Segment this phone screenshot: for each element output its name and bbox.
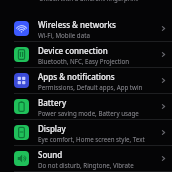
staticText: Do not disturb, Ringtone, Vibrate (38, 161, 134, 169)
staticText: Eye comfort, Home screen style, Text sty… (38, 135, 154, 143)
staticText: Permissions, Default apps, App twin (38, 83, 143, 91)
button[interactable]: Battery (0, 94, 172, 119)
button[interactable]: Device connection (0, 42, 172, 67)
other: Open (154, 42, 172, 67)
other: Open (154, 94, 172, 119)
button[interactable]: Sound (0, 146, 172, 171)
staticText: Wireless & networks (38, 19, 116, 30)
staticText: Display (38, 123, 66, 134)
staticText: Wi-Fi, Mobile data (38, 31, 90, 39)
staticText: Unlock with a different fingerprint (39, 0, 138, 2)
staticText: Power saving mode, Battery usage (38, 109, 139, 117)
button[interactable]: Wireless & networks (0, 16, 172, 41)
staticText: Bluetooth, NFC, Easy Projection (38, 57, 130, 65)
staticText: Sound (38, 149, 63, 160)
staticText: Battery (38, 97, 67, 108)
button[interactable]: Unlock with a different fingerprint (0, 0, 172, 9)
other: Open (154, 120, 172, 145)
other: Open (154, 146, 172, 171)
staticText: Device connection (38, 45, 108, 56)
button[interactable]: Display (0, 120, 172, 145)
other: Open (154, 16, 172, 41)
button[interactable]: Apps & notifications (0, 68, 172, 93)
staticText: Apps & notifications (38, 71, 115, 82)
other: Open (154, 68, 172, 93)
